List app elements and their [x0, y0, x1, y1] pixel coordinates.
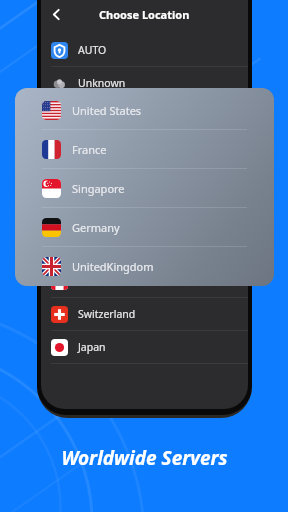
button[interactable]: AUTO [41, 34, 248, 67]
staticText: Unknown [78, 76, 126, 90]
staticText: UnitedKingdom [72, 259, 154, 274]
button[interactable]: Germany [41, 199, 248, 232]
staticText: France [72, 142, 107, 157]
button[interactable]: Switzerland [41, 298, 248, 331]
staticText: AUTO [78, 43, 107, 57]
staticText: Germany [72, 220, 120, 235]
button[interactable]: Unknown [41, 67, 248, 100]
button[interactable]: UnitedKingdom [41, 232, 248, 265]
button[interactable]: France [15, 130, 274, 169]
button[interactable]: France [41, 133, 248, 166]
staticText: Canada [78, 274, 116, 288]
button[interactable]: UnitedKingdom [15, 247, 274, 285]
staticText: UnitedKingdom [78, 241, 156, 255]
staticText: Japan [78, 340, 106, 354]
button[interactable]: Back [45, 3, 67, 25]
button[interactable]: Germany [15, 208, 274, 247]
button[interactable]: Singapore [15, 169, 274, 208]
button[interactable]: Canada [41, 265, 248, 298]
staticText: Singapore [72, 181, 125, 196]
button[interactable]: Japan [41, 331, 248, 364]
button[interactable]: United States [41, 100, 248, 133]
button[interactable]: United States [15, 91, 274, 130]
staticText: Switzerland [78, 307, 136, 321]
staticText: Choose Location [99, 7, 190, 22]
staticText: United States [78, 109, 144, 123]
staticText: United States [72, 103, 142, 118]
button[interactable]: Singapore [41, 166, 248, 199]
staticText: France [78, 142, 111, 156]
staticText: Singapore [78, 175, 129, 189]
staticText: Worldwide Servers [61, 445, 228, 471]
